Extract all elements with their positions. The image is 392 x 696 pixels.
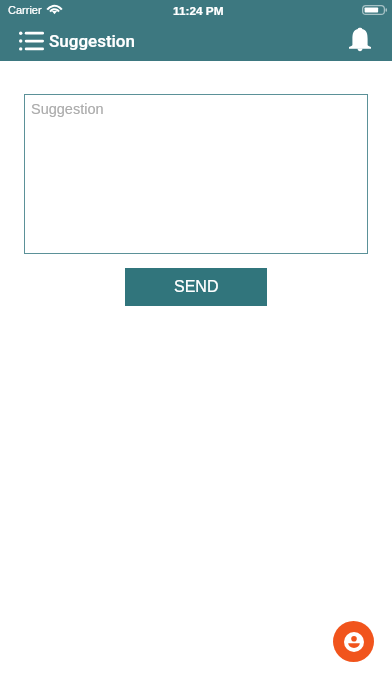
staticText: 11:24 PM	[173, 4, 224, 17]
staticText: Carrier	[8, 4, 42, 16]
button[interactable]: Notifications	[346, 25, 374, 53]
button[interactable]: Suggestion	[24, 94, 368, 254]
staticText: Suggestion	[31, 101, 104, 117]
button[interactable]: Menu	[15, 25, 47, 57]
button[interactable]: SEND	[125, 268, 267, 306]
staticText: SEND	[174, 278, 219, 296]
button[interactable]: Account	[333, 621, 374, 662]
staticText: Suggestion	[49, 31, 135, 51]
